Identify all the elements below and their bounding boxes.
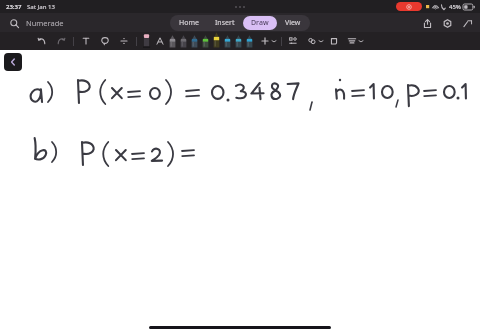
button[interactable]: Select xyxy=(306,35,318,47)
staticText: 23:37 xyxy=(6,3,22,11)
button[interactable]: Pen xyxy=(233,32,244,50)
button[interactable]: Back xyxy=(4,53,22,71)
button[interactable]: Ruler xyxy=(154,35,166,47)
staticText: Sat Jan 13 xyxy=(27,3,55,11)
button[interactable]: Pen xyxy=(244,32,255,50)
staticText: 45% xyxy=(449,3,461,11)
staticText: Draw xyxy=(251,18,269,28)
button[interactable]: Math xyxy=(118,35,130,47)
button[interactable]: Pen xyxy=(211,32,222,50)
staticText: View xyxy=(285,18,301,28)
button[interactable]: Search xyxy=(7,16,21,30)
staticText: Numerade xyxy=(26,18,64,28)
staticText: Insert xyxy=(215,18,235,28)
button[interactable]: Redo xyxy=(55,35,67,47)
other: Recording xyxy=(396,2,422,11)
button[interactable]: Settings xyxy=(440,16,454,30)
button[interactable]: Add pen xyxy=(259,35,271,47)
button[interactable]: Share xyxy=(420,16,434,30)
button[interactable]: Pen xyxy=(167,32,178,50)
button[interactable]: More tools xyxy=(346,35,358,47)
button[interactable]: Eraser xyxy=(141,32,152,50)
button[interactable]: Ink to shape xyxy=(287,35,299,47)
button[interactable]: Text xyxy=(80,35,92,47)
button[interactable]: Stencil xyxy=(328,35,340,47)
button[interactable]: Draw xyxy=(243,16,277,30)
button[interactable]: Pen xyxy=(178,32,189,50)
button[interactable]: Pen xyxy=(200,32,211,50)
button[interactable]: Pen xyxy=(189,32,200,50)
button[interactable]: Undo xyxy=(36,35,48,47)
staticText: Home xyxy=(179,18,199,28)
button[interactable]: Insert xyxy=(207,16,243,30)
button[interactable]: Pen xyxy=(222,32,233,50)
button[interactable]: Home xyxy=(171,16,207,30)
button[interactable]: Collapse ribbon xyxy=(460,16,474,30)
button[interactable]: Lasso xyxy=(99,35,111,47)
button[interactable]: View xyxy=(277,16,309,30)
